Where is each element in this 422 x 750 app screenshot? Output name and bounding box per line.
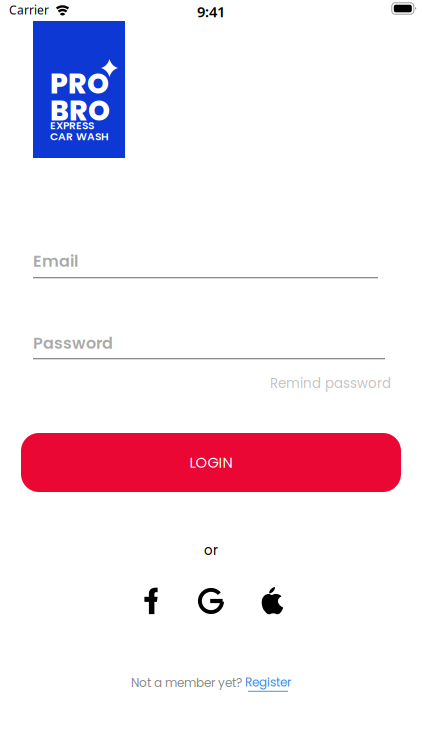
staticText: Password: [33, 332, 113, 354]
staticText: Carrier: [9, 2, 49, 18]
button[interactable]: Continue with Apple: [250, 582, 294, 620]
button[interactable]: LOGIN: [21, 433, 401, 492]
staticText: Remind password: [270, 374, 391, 393]
staticText: LOGIN: [189, 452, 232, 473]
button[interactable]: Continue with Google: [189, 582, 233, 620]
staticText: BRO: [50, 91, 110, 130]
staticText: or: [204, 541, 218, 560]
staticText: EXPRESS: [50, 118, 94, 133]
staticText: Email: [33, 250, 78, 272]
staticText: CAR WASH: [50, 129, 109, 144]
button[interactable]: Remind password: [270, 374, 391, 393]
staticText: Register: [245, 674, 291, 691]
staticText: PRO: [50, 64, 109, 103]
button[interactable]: Register: [245, 674, 291, 692]
staticText: Not a member yet?: [131, 674, 245, 691]
button[interactable]: Continue with Facebook: [129, 582, 173, 620]
staticText: 9:41: [197, 2, 225, 21]
